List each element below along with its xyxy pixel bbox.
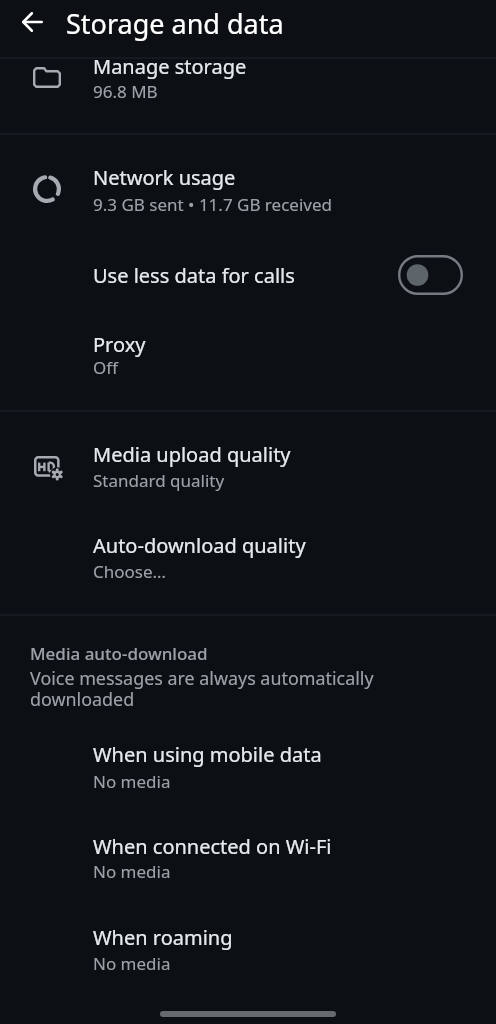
staticText: Storage and data	[66, 5, 284, 42]
staticText: Use less data for calls	[93, 262, 295, 289]
staticText: 96.8 MB	[93, 80, 158, 103]
staticText: When connected on Wi-Fi	[93, 833, 332, 860]
staticText: Standard quality	[93, 469, 225, 492]
button[interactable]: Network usage	[0, 134, 496, 232]
button[interactable]: Auto-download quality	[0, 508, 496, 613]
staticText: When using mobile data	[93, 741, 322, 768]
staticText: Media auto-download	[30, 642, 208, 665]
button[interactable]: Media upload quality	[0, 411, 496, 508]
staticText: No media	[93, 952, 171, 975]
button[interactable]: When using mobile data	[0, 718, 496, 810]
staticText: No media	[93, 770, 171, 793]
staticText: Network usage	[93, 164, 236, 191]
button[interactable]: Back	[11, 6, 53, 38]
button[interactable]: Use less data for calls	[0, 232, 496, 318]
staticText: When roaming	[93, 924, 233, 951]
button[interactable]: Manage storage	[0, 42, 496, 133]
staticText: Media upload quality	[93, 441, 291, 468]
button[interactable]: Proxy	[0, 318, 496, 410]
button[interactable]: When connected on Wi-Fi	[0, 810, 496, 901]
staticText: Proxy	[93, 331, 146, 358]
button[interactable]: Use less data for calls toggle	[398, 255, 463, 295]
staticText: No media	[93, 860, 171, 883]
staticText: Manage storage	[93, 53, 247, 80]
staticText: Choose…	[93, 560, 166, 583]
staticText: Voice messages are always automatically …	[30, 666, 390, 712]
staticText: Off	[93, 356, 118, 379]
staticText: 9.3 GB sent • 11.7 GB received	[93, 193, 332, 216]
staticText: Auto-download quality	[93, 532, 306, 559]
button[interactable]: When roaming	[0, 901, 496, 992]
